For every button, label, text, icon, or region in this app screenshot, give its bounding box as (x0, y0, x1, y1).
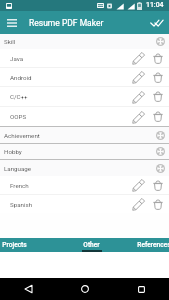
button[interactable]: Delete C/C++ (146, 87, 169, 106)
staticText: Resume PDF Maker (29, 18, 104, 28)
button[interactable]: Home (57, 278, 113, 300)
button[interactable]: Save (145, 11, 169, 34)
button[interactable]: Java (0, 49, 169, 67)
staticText: Achievement (4, 132, 40, 139)
button[interactable]: Language (0, 160, 169, 176)
staticText: OOPS (10, 113, 27, 120)
button[interactable]: Android (0, 68, 169, 86)
button[interactable]: OOPS (0, 107, 169, 126)
staticText: Language (4, 165, 32, 172)
button[interactable]: Open navigation drawer (0, 11, 23, 34)
staticText: Other (83, 241, 100, 249)
button[interactable]: Delete French (146, 176, 169, 194)
staticText: Android (10, 74, 32, 81)
button[interactable]: Back (0, 278, 57, 300)
staticText: References (137, 241, 169, 249)
button[interactable]: Delete Android (146, 68, 169, 86)
button[interactable]: Achievement (0, 127, 169, 143)
button[interactable]: Edit Spanish (127, 195, 146, 213)
button[interactable]: Edit Android (127, 68, 146, 86)
button[interactable]: Edit Java (127, 49, 146, 67)
button[interactable]: Projects (0, 238, 30, 252)
button[interactable]: C/C++ (0, 87, 169, 106)
button[interactable]: Delete Spanish (146, 195, 169, 213)
staticText: C/C++ (10, 93, 28, 100)
button[interactable]: References (137, 238, 169, 252)
staticText: Projects (2, 241, 27, 249)
button[interactable]: Recent apps (113, 278, 169, 300)
button[interactable]: Delete OOPS (146, 107, 169, 126)
staticText: Hobby (4, 148, 22, 155)
button[interactable]: Edit French (127, 176, 146, 194)
button[interactable]: Skill (0, 34, 169, 49)
button[interactable]: Edit C/C++ (127, 87, 146, 106)
button[interactable]: Add Achievement (152, 127, 169, 143)
staticText: French (10, 182, 29, 189)
button[interactable]: Hobby (0, 144, 169, 159)
button[interactable]: Spanish (0, 195, 169, 213)
button[interactable]: Add Skill (152, 34, 169, 49)
button[interactable]: Add Hobby (152, 144, 169, 159)
staticText: Java (10, 55, 24, 62)
button[interactable]: French (0, 176, 169, 194)
staticText: Spanish (10, 201, 33, 208)
button[interactable]: Edit OOPS (127, 107, 146, 126)
button[interactable]: Other (76, 238, 107, 252)
staticText: Skill (4, 38, 16, 45)
button[interactable]: Delete Java (146, 49, 169, 67)
button[interactable]: Add Language (152, 160, 169, 176)
staticText: 11:04 (146, 1, 164, 9)
